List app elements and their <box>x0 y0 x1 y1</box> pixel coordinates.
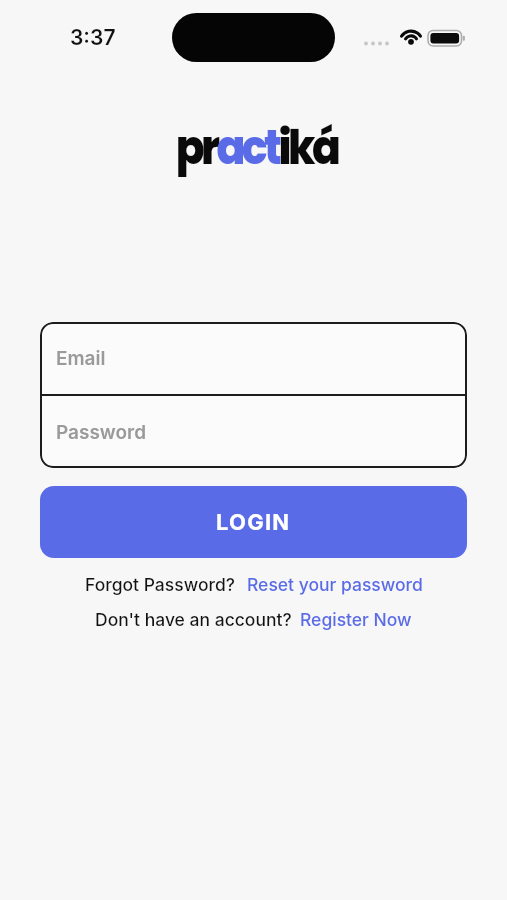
button[interactable]: Email <box>40 322 467 394</box>
staticText: 3:37 <box>70 25 116 50</box>
button[interactable]: LOGIN <box>40 486 467 558</box>
staticText: Forgot Password? <box>85 574 235 595</box>
button[interactable]: Register Now <box>300 609 412 630</box>
staticText: LOGIN <box>216 509 291 536</box>
staticText: Don't have an account? <box>95 609 292 630</box>
button[interactable]: Password <box>40 396 467 468</box>
staticText: Email <box>56 347 106 370</box>
button[interactable]: Reset your password <box>247 574 423 595</box>
staticText: Password <box>56 421 147 444</box>
staticText: practiká <box>32 114 481 181</box>
